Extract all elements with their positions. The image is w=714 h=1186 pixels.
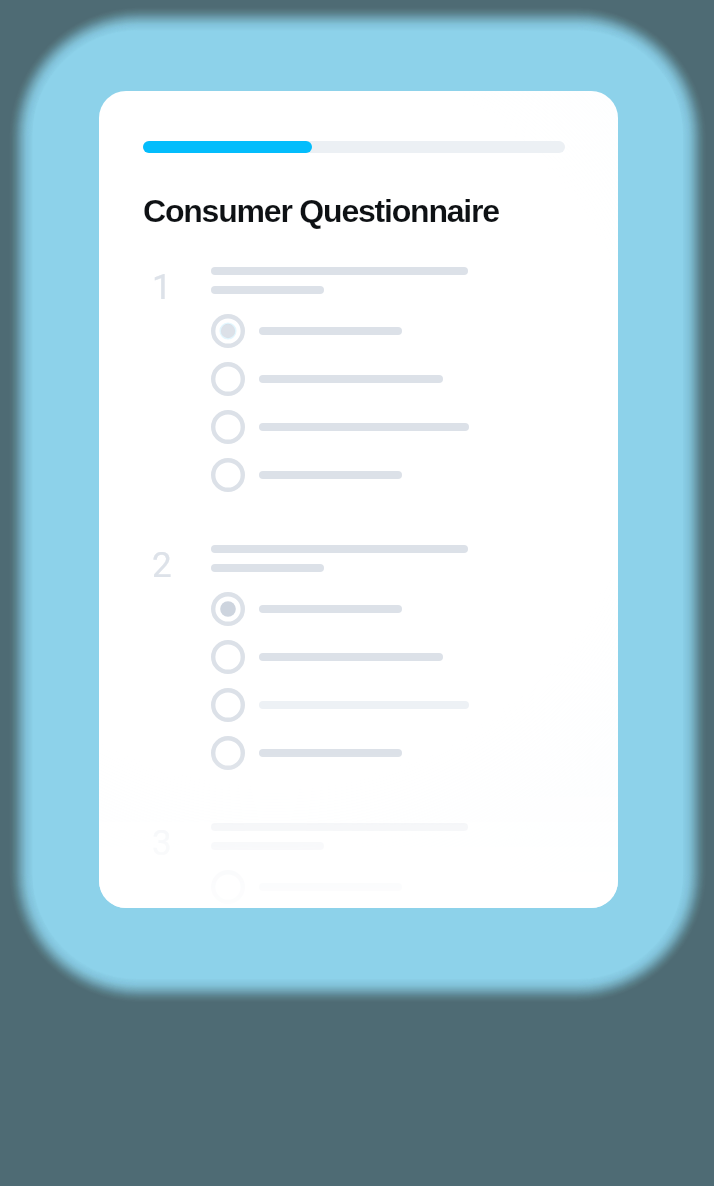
staticText: 1	[152, 267, 172, 308]
other: Progress: 40 percent complete	[143, 141, 565, 153]
staticText: Consumer Questionnaire	[143, 193, 499, 229]
button[interactable]: Option 3 of question 2	[211, 681, 591, 729]
button[interactable]: Option 3 of question 1	[211, 403, 591, 451]
button[interactable]: Option 1 of question 1	[211, 307, 591, 355]
staticText: 2	[152, 545, 172, 586]
button[interactable]: Option 1 of question 2	[211, 585, 591, 633]
button[interactable]: Option 2 of question 1	[211, 355, 591, 403]
button[interactable]: Option 4 of question 1	[211, 451, 591, 499]
button[interactable]: Option 4 of question 2	[211, 729, 591, 777]
button[interactable]: Option 2 of question 2	[211, 633, 591, 681]
